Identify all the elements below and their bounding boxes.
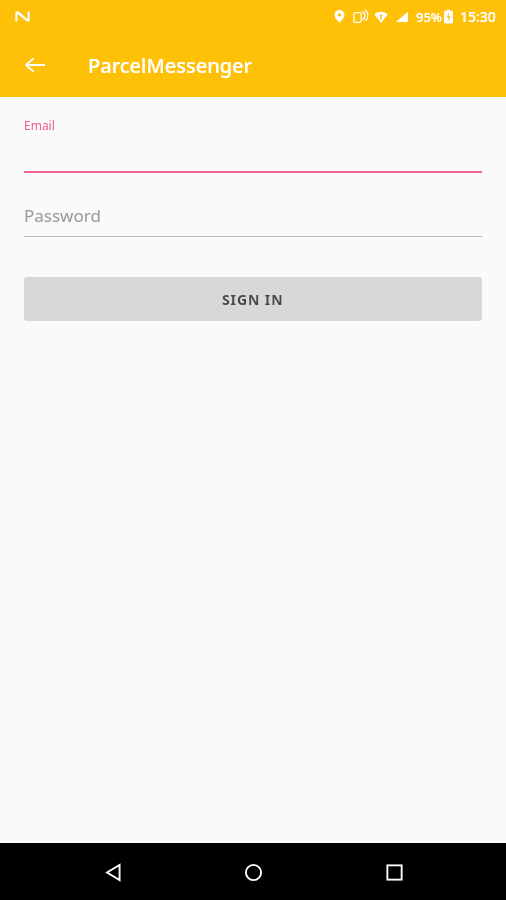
staticText: ParcelMessenger [88,52,253,79]
button[interactable]: Back [85,844,141,900]
staticText: Email [24,117,55,133]
button[interactable]: Recent apps [366,844,422,900]
button[interactable]: Email [24,97,482,173]
button[interactable]: SIGN IN [24,277,482,321]
button[interactable]: Password [24,204,482,237]
staticText: Password [24,204,101,227]
button[interactable]: Back [14,44,56,86]
staticText: 15:30 [460,7,496,26]
staticText: SIGN IN [222,290,284,309]
staticText: 95% [416,8,442,26]
button[interactable]: Home [225,844,281,900]
